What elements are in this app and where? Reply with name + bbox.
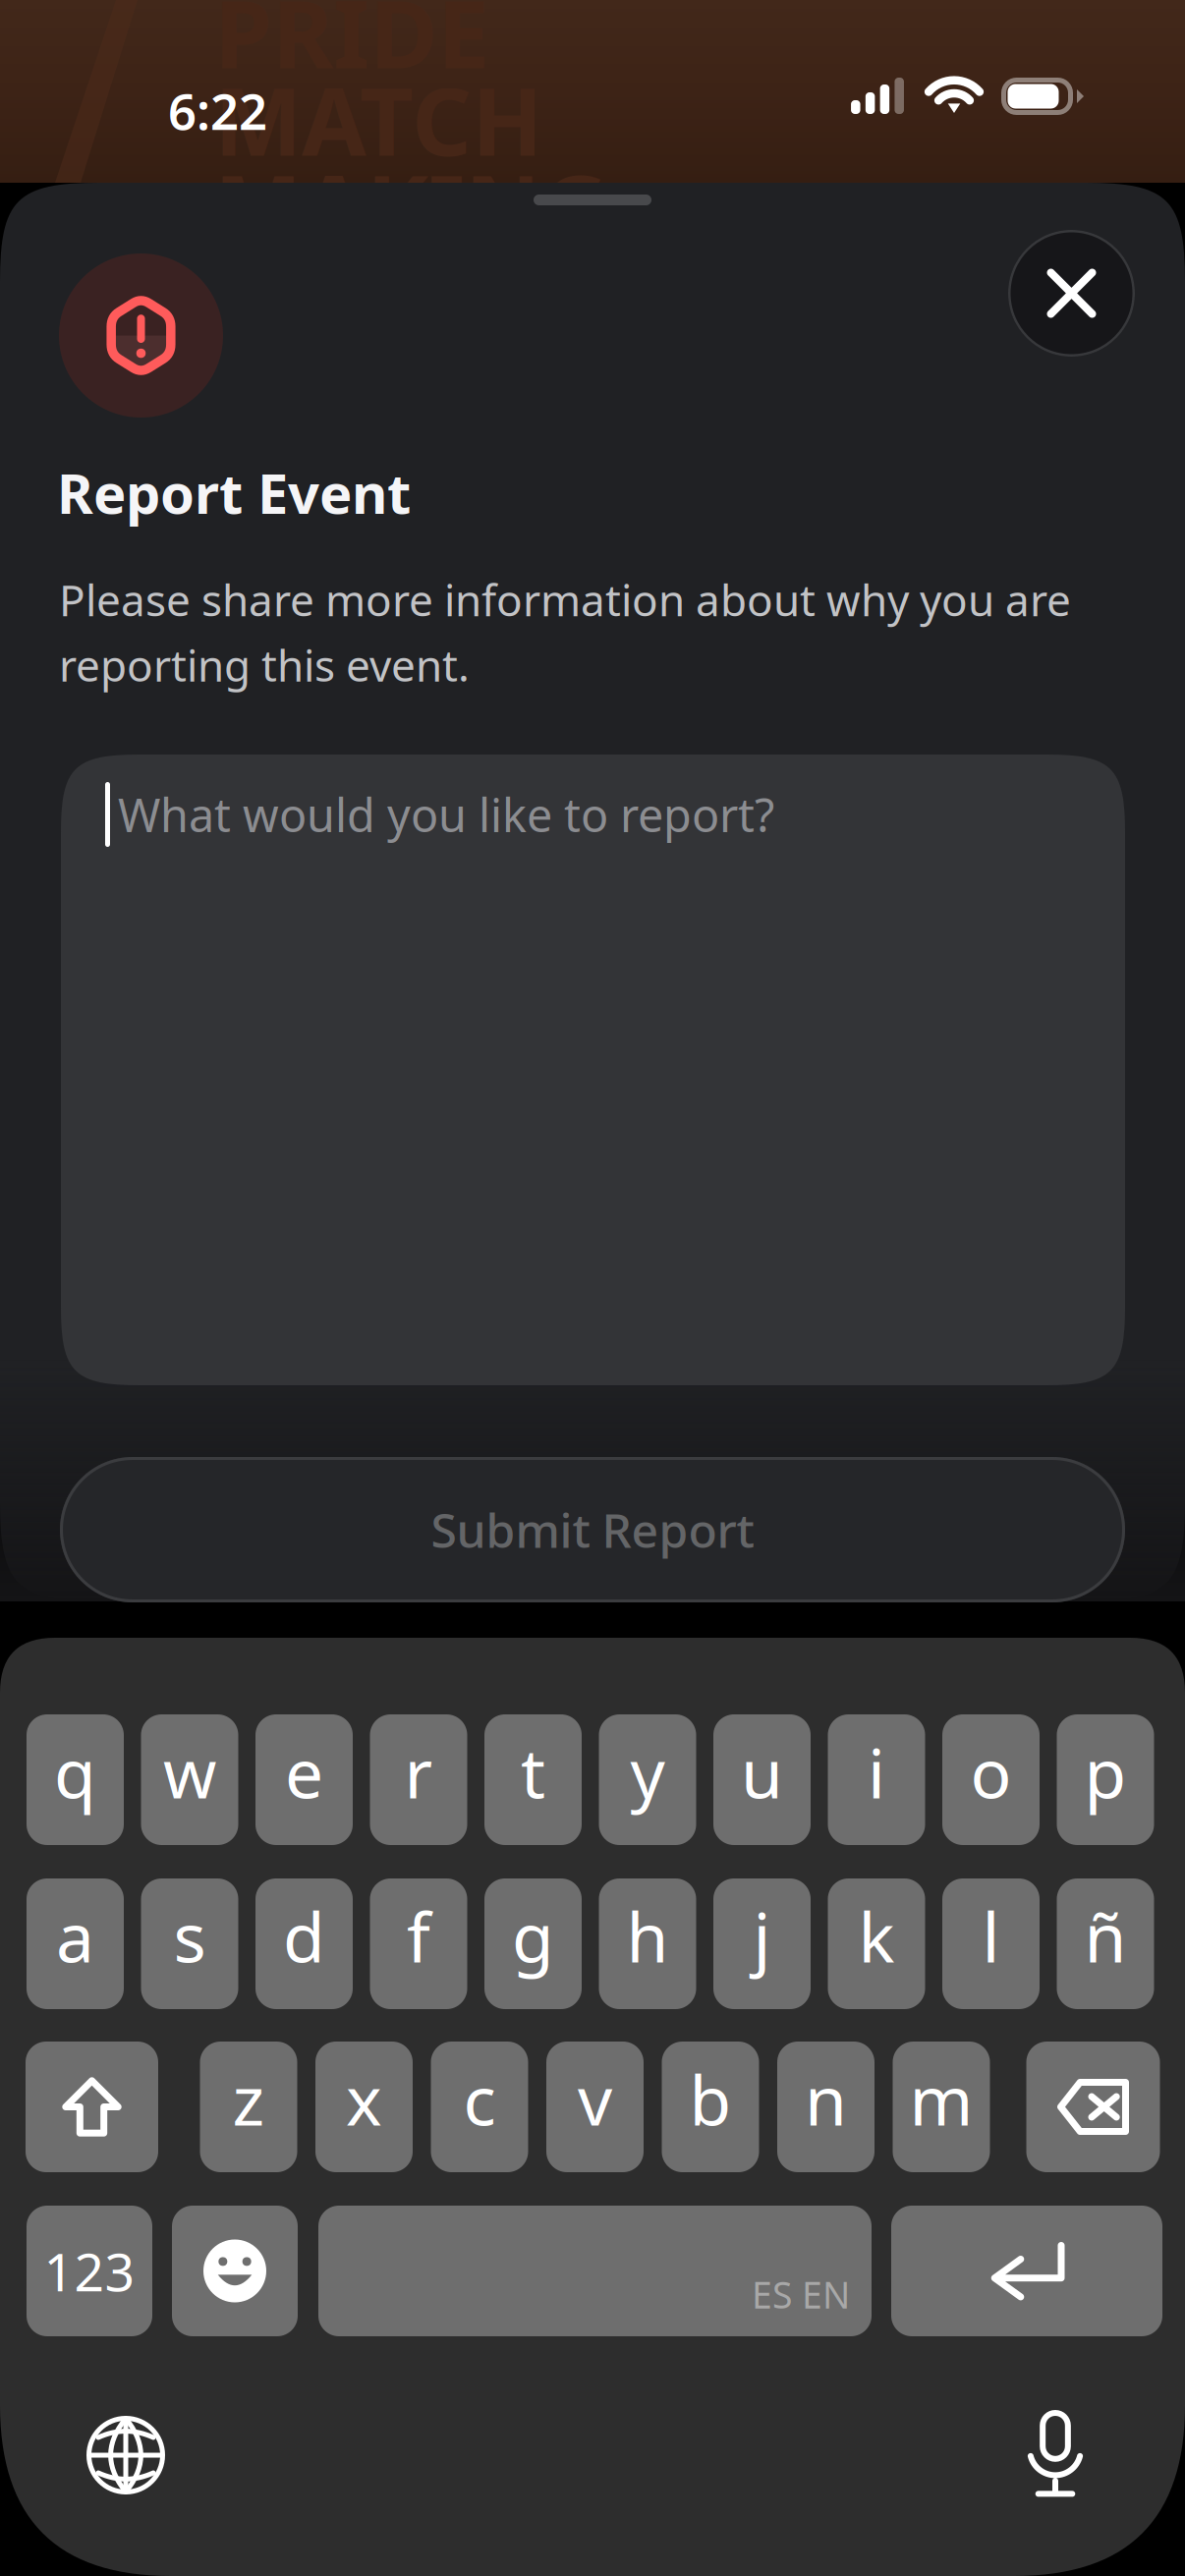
staticText: Report Event <box>57 456 411 529</box>
button[interactable]: k <box>828 1878 925 2009</box>
button[interactable]: o <box>942 1714 1040 1845</box>
staticText: PRIDE <box>214 0 489 94</box>
staticText: m <box>909 2054 973 2144</box>
button[interactable]: l <box>942 1878 1040 2009</box>
staticText: y <box>630 1727 665 1817</box>
button[interactable]: r <box>370 1714 467 1845</box>
button[interactable]: d <box>255 1878 353 2009</box>
staticText: 123 <box>44 2236 135 2306</box>
staticText: x <box>346 2054 382 2144</box>
button[interactable]: b <box>662 2042 759 2172</box>
button[interactable]: g <box>484 1878 582 2009</box>
staticText: t <box>521 1727 545 1817</box>
button[interactable]: f <box>370 1878 467 2009</box>
button[interactable]: Space <box>318 2206 872 2336</box>
button[interactable]: n <box>777 2042 875 2172</box>
button[interactable]: z <box>200 2042 297 2172</box>
button[interactable]: t <box>484 1714 582 1845</box>
staticText: b <box>689 2054 732 2144</box>
staticText: o <box>970 1727 1012 1817</box>
staticText: What would you like to report? <box>118 784 774 845</box>
button[interactable]: s <box>141 1878 238 2009</box>
staticText: MAKING <box>214 145 608 269</box>
button[interactable]: w <box>141 1714 238 1845</box>
button[interactable]: v <box>546 2042 644 2172</box>
staticText: Submit Report <box>431 1498 754 1561</box>
staticText: MATCH <box>214 58 542 181</box>
button[interactable]: Dictation <box>1020 2410 1091 2496</box>
staticText: w <box>163 1727 216 1817</box>
staticText: ES EN <box>752 2270 850 2319</box>
staticText: h <box>626 1891 669 1981</box>
staticText: c <box>463 2054 496 2144</box>
button[interactable]: Return <box>891 2206 1162 2336</box>
staticText: a <box>56 1891 94 1981</box>
button[interactable]: Numbers <box>27 2206 152 2336</box>
staticText: 6:22 <box>168 78 267 144</box>
button[interactable]: ñ <box>1057 1878 1154 2009</box>
button[interactable]: Close <box>1008 230 1135 357</box>
button[interactable]: u <box>713 1714 811 1845</box>
staticText: e <box>285 1727 323 1817</box>
staticText: f <box>407 1891 430 1981</box>
staticText: n <box>805 2054 847 2144</box>
button[interactable]: i <box>828 1714 925 1845</box>
staticText: l <box>982 1891 1000 1981</box>
button[interactable]: Shift <box>26 2042 158 2172</box>
button[interactable]: Emoji <box>172 2206 298 2336</box>
button[interactable]: m <box>893 2042 990 2172</box>
button[interactable]: e <box>255 1714 353 1845</box>
staticText: u <box>741 1727 783 1817</box>
staticText: Please share more information about why … <box>59 571 1071 694</box>
staticText: g <box>512 1891 554 1981</box>
staticText: s <box>173 1891 206 1981</box>
button[interactable]: Delete <box>1026 2042 1160 2172</box>
staticText: ñ <box>1084 1891 1127 1981</box>
staticText: d <box>283 1891 325 1981</box>
button[interactable]: j <box>713 1878 811 2009</box>
staticText: v <box>578 2054 612 2144</box>
staticText: z <box>232 2054 265 2144</box>
button[interactable]: c <box>431 2042 528 2172</box>
staticText: q <box>54 1727 96 1817</box>
button[interactable]: y <box>599 1714 696 1845</box>
staticText: j <box>753 1891 771 1981</box>
staticText: p <box>1084 1727 1127 1817</box>
staticText: k <box>858 1891 895 1981</box>
button[interactable]: a <box>27 1878 124 2009</box>
button[interactable]: q <box>27 1714 124 1845</box>
staticText: i <box>868 1727 885 1817</box>
staticText: r <box>404 1727 433 1817</box>
button[interactable]: h <box>599 1878 696 2009</box>
button[interactable]: x <box>315 2042 413 2172</box>
button[interactable]: Next keyboard <box>86 2416 165 2494</box>
button[interactable]: p <box>1057 1714 1154 1845</box>
button[interactable]: Submit Report <box>60 1457 1125 1602</box>
